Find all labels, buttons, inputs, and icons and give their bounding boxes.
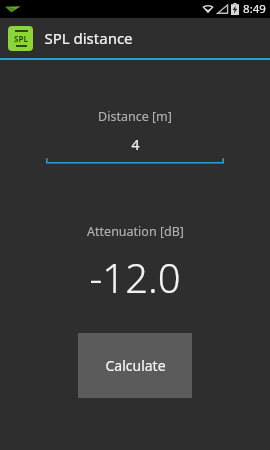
- staticText: SPL: [14, 33, 28, 44]
- button[interactable]: Calculate: [78, 333, 192, 398]
- staticText: -12.0: [89, 250, 181, 304]
- staticText: Calculate: [105, 356, 166, 375]
- staticText: 8:49: [243, 1, 266, 17]
- staticText: SPL distance: [44, 28, 133, 48]
- staticText: 4: [131, 135, 140, 154]
- staticText: Attenuation [dB]: [87, 223, 184, 240]
- staticText: Distance [m]: [98, 108, 172, 125]
- button[interactable]: 4: [46, 135, 224, 164]
